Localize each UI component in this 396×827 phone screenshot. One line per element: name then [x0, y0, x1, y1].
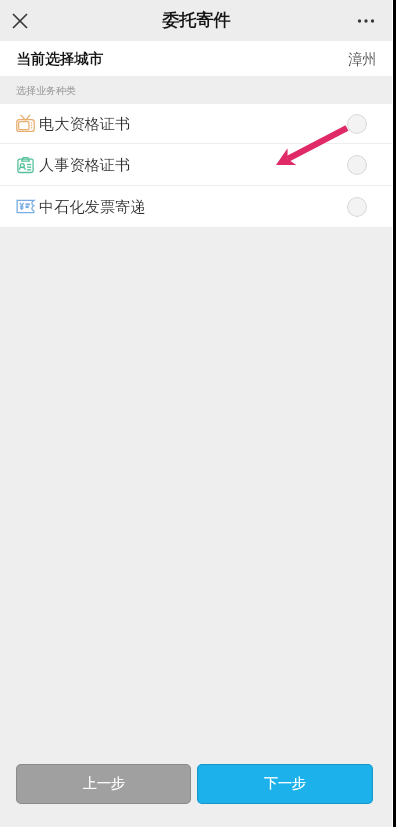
button[interactable]: 当前选择城市 — [0, 41, 392, 76]
button[interactable]: 电大资格证书 — [0, 104, 392, 143]
staticText: 下一步 — [264, 775, 306, 793]
staticText: 漳州 — [348, 50, 377, 68]
staticText: 委托寄件 — [162, 10, 230, 31]
button[interactable]: 人事资格证书 — [0, 144, 392, 185]
staticText: 上一步 — [83, 775, 125, 793]
staticText: 人事资格证书 — [39, 155, 131, 174]
button[interactable]: More options — [350, 5, 382, 37]
staticText: 选择业务种类 — [16, 84, 76, 97]
staticText: 中石化发票寄递 — [39, 197, 146, 216]
button[interactable]: 上一步 — [16, 764, 191, 804]
button[interactable]: Close — [5, 6, 34, 35]
button[interactable]: 中石化发票寄递 — [0, 186, 392, 227]
staticText: 电大资格证书 — [39, 114, 131, 133]
button[interactable]: 下一步 — [197, 764, 373, 804]
staticText: 当前选择城市 — [16, 50, 103, 68]
